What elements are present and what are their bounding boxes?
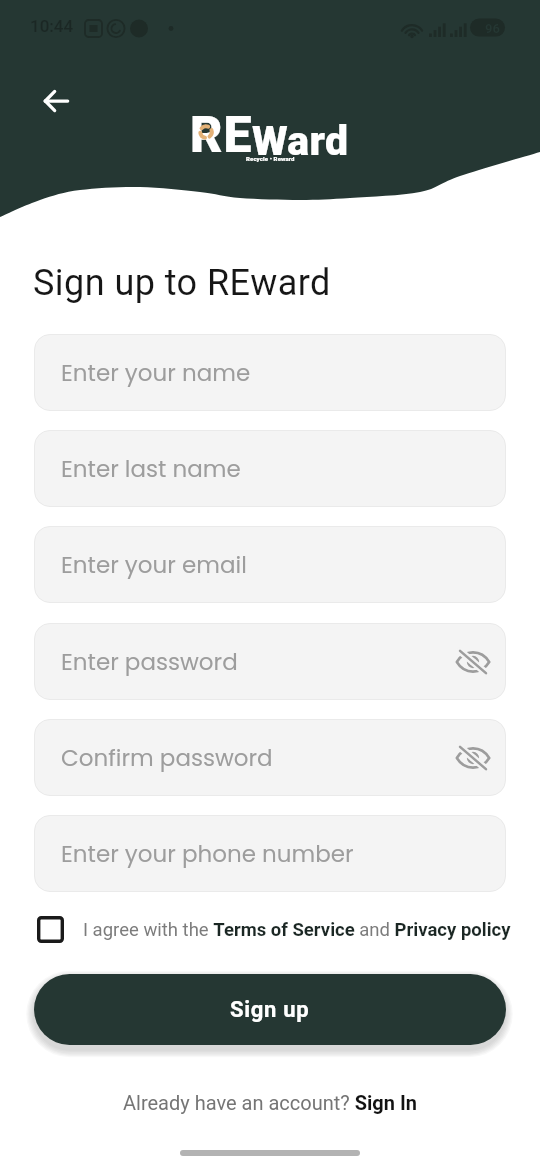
button[interactable]: Back [32,77,80,125]
staticText: Sign up to REward [33,262,331,304]
button[interactable]: Show password [451,736,495,780]
staticText: Confirm password [61,742,273,774]
staticText: Enter password [61,646,238,678]
staticText: 96 [485,21,500,36]
staticText: Enter your email [61,549,247,581]
button[interactable]: I agree with the Terms of Service and Pr… [37,916,511,943]
button[interactable]: Enter password [34,623,506,700]
staticText: Enter last name [61,453,241,485]
button[interactable]: Already have an account? Sign In [123,1091,417,1114]
staticText: RE [190,106,253,165]
staticText: Recycle • Reward [246,155,295,162]
staticText: Enter your phone number [61,838,354,870]
button[interactable]: Enter your email [34,526,506,603]
staticText: Sign up [230,997,310,1023]
button[interactable]: Sign up [34,974,506,1045]
staticText: 10:44 [30,16,74,36]
staticText: Enter your name [61,357,251,389]
button[interactable]: Enter your phone number [34,815,506,892]
staticText: Ward [252,117,349,165]
button[interactable]: Enter last name [34,430,506,507]
button[interactable]: Enter your name [34,334,506,411]
staticText: I agree with the Terms of Service and Pr… [83,919,511,941]
button[interactable]: Show password [451,640,495,684]
button[interactable]: Confirm password [34,719,506,796]
